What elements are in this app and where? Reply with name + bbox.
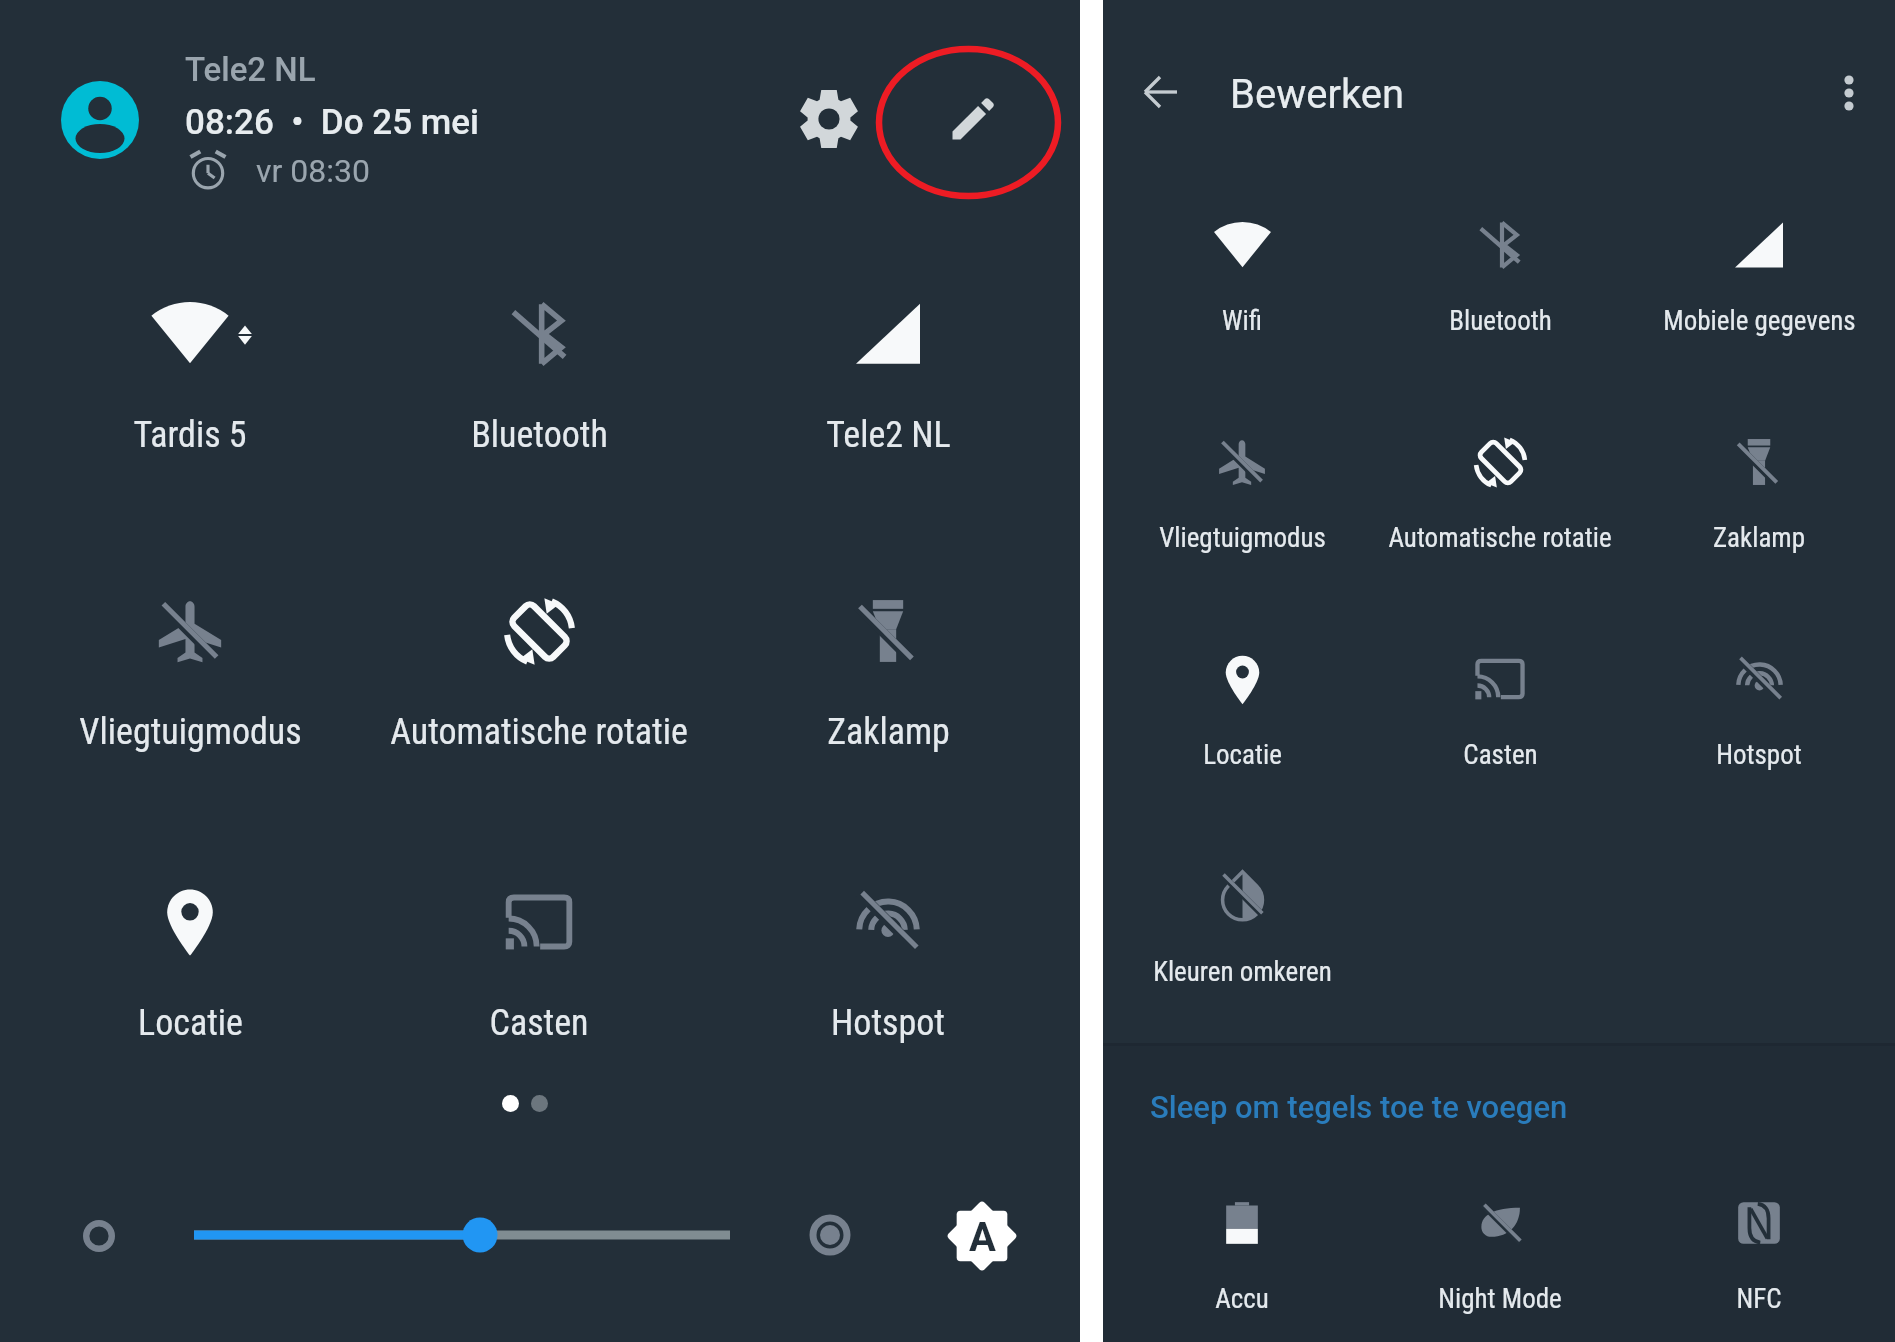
staticText: Casten [489, 1002, 589, 1044]
staticText: Kleuren omkeren [1153, 956, 1332, 988]
staticText: Bluetooth [471, 414, 608, 456]
staticText: Tardis 5 [133, 414, 247, 456]
button[interactable]: Kleuren omkeren [1113, 865, 1371, 1013]
staticText: Wifi [1222, 305, 1262, 337]
staticText: A [969, 1214, 996, 1261]
button[interactable]: Automatische rotatie [1371, 431, 1629, 579]
staticText: Automatische rotatie [390, 711, 688, 753]
button[interactable]: Wifi [1113, 214, 1371, 362]
button[interactable]: Bluetooth [365, 293, 713, 493]
button[interactable]: Vliegtuigmodus [16, 590, 364, 790]
button[interactable]: Locatie [16, 881, 364, 1081]
button[interactable]: Zaklamp [1630, 431, 1888, 579]
staticText: Sleep om tegels toe te voegen [1150, 1089, 1568, 1125]
staticText: 08:26 • Do 25 mei [185, 102, 479, 143]
button[interactable]: High brightness [809, 1214, 851, 1256]
button[interactable]: Vliegtuigmodus [1113, 431, 1371, 579]
staticText: Zaklamp [827, 711, 950, 753]
button[interactable]: Hotspot [714, 881, 1062, 1081]
button[interactable]: Mobiele gegevens [1630, 214, 1888, 362]
button[interactable]: Bluetooth [1371, 214, 1629, 362]
button[interactable]: Locatie [1113, 648, 1371, 796]
button[interactable]: Auto brightness [944, 1198, 1020, 1274]
button[interactable]: Edit [932, 80, 1012, 160]
staticText: vr 08:30 [256, 152, 370, 190]
staticText: Night Mode [1438, 1283, 1562, 1315]
button[interactable]: Account [61, 81, 139, 159]
staticText: Tele2 NL [185, 50, 316, 89]
staticText: Tele2 NL [826, 414, 951, 456]
button[interactable]: Night Mode [1371, 1192, 1629, 1340]
staticText: Casten [1463, 739, 1538, 771]
button[interactable]: Zaklamp [714, 590, 1062, 790]
button[interactable]: Low brightness [83, 1220, 115, 1252]
button[interactable]: Casten [365, 881, 713, 1081]
staticText: NFC [1736, 1283, 1782, 1315]
button[interactable]: NFC [1630, 1192, 1888, 1340]
button[interactable]: Hotspot [1630, 648, 1888, 796]
button[interactable]: Accu [1113, 1192, 1371, 1340]
button[interactable]: Back [1123, 54, 1199, 130]
staticText: Zaklamp [1713, 522, 1805, 554]
button[interactable]: Tele2 NL [714, 293, 1062, 493]
staticText: Bluetooth [1449, 305, 1552, 337]
staticText: Automatische rotatie [1388, 522, 1612, 554]
staticText: Bewerken [1230, 71, 1405, 118]
button[interactable]: Settings [789, 79, 869, 159]
staticText: Locatie [138, 1002, 243, 1044]
button[interactable]: Casten [1371, 648, 1629, 796]
staticText: Vliegtuigmodus [79, 711, 302, 753]
button[interactable]: More options [1811, 55, 1887, 131]
staticText: Hotspot [831, 1002, 945, 1044]
button[interactable]: Automatische rotatie [365, 590, 713, 790]
staticText: Vliegtuigmodus [1159, 522, 1326, 554]
staticText: Hotspot [1716, 739, 1802, 771]
staticText: Accu [1215, 1283, 1269, 1315]
staticText: Mobiele gegevens [1663, 305, 1856, 337]
button[interactable]: Tardis 5 [16, 293, 364, 493]
staticText: Locatie [1203, 739, 1282, 771]
